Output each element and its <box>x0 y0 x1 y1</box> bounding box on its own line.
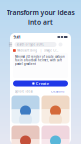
staticText: Creations <box>51 90 64 93</box>
staticText: Search or type a URL <box>16 43 43 46</box>
staticText: Minimal 3D render of a cute cartoon fox … <box>15 55 65 66</box>
staticText: into art <box>28 18 53 27</box>
staticText: Explore ideas <box>14 90 32 93</box>
button[interactable]: Creations <box>44 89 70 94</box>
staticText: Transform your ideas <box>6 8 74 17</box>
button[interactable]: Create <box>13 80 68 86</box>
button[interactable]: Explore ideas <box>10 89 36 94</box>
staticText: Create <box>36 81 49 86</box>
staticText: 9:41 <box>13 34 20 40</box>
staticText: Microsoft Bing | Image Creator <box>17 49 58 52</box>
